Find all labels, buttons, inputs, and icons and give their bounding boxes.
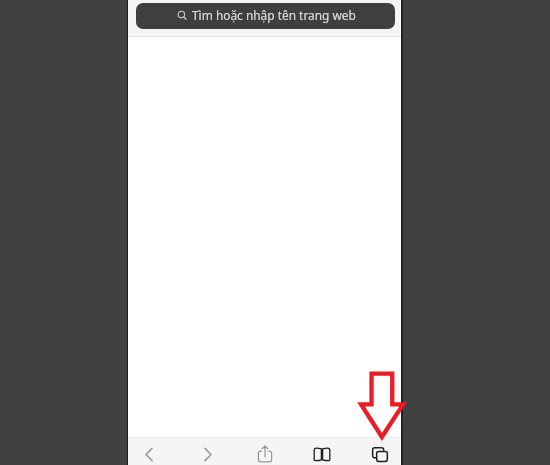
button[interactable]: Bookmarks — [308, 438, 336, 465]
button[interactable]: Back — [135, 438, 163, 465]
button[interactable]: Forward — [194, 438, 222, 465]
button[interactable]: Tabs — [366, 438, 394, 465]
button[interactable]: Tìm hoặc nhập tên trang web — [136, 3, 395, 29]
button[interactable]: Share — [251, 438, 279, 465]
staticText: Tìm hoặc nhập tên trang web — [192, 7, 356, 23]
